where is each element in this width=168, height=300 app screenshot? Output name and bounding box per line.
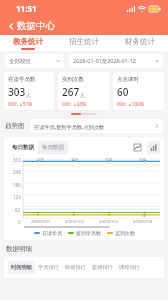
staticText: 在读学员: [42, 230, 62, 236]
staticText: 在读学员,签到学员数,点到次数: [34, 123, 155, 130]
staticText: 300: [105, 157, 113, 163]
button[interactable]: 每日数据: [8, 141, 38, 154]
staticText: 财务统计: [125, 37, 155, 46]
staticText: 同比 ↓100%: [117, 101, 145, 106]
staticText: 数据明细: [6, 245, 32, 253]
button[interactable]: 学员排行: [35, 261, 62, 274]
button[interactable]: 2026-01-01至2026-01-12: [69, 54, 163, 68]
staticText: 20260101: [31, 219, 51, 225]
staticText: 186: [13, 182, 21, 188]
staticText: 时间明细: [11, 264, 32, 271]
staticText: 点名课时: [117, 76, 139, 83]
staticText: 趋势图: [5, 122, 25, 130]
staticText: 20260103: [99, 219, 119, 225]
staticText: 300: [37, 157, 45, 163]
staticText: 20260104: [133, 219, 153, 225]
staticText: 300: [71, 157, 79, 163]
staticText: 实到次数: [62, 76, 84, 83]
staticText: 迟到次数: [115, 230, 135, 236]
staticText: 30: [141, 213, 146, 219]
staticText: 课程排行: [119, 264, 140, 271]
button[interactable]: 课程排行: [116, 261, 143, 274]
button[interactable]: 折线图: [131, 141, 144, 154]
staticText: 11:51: [16, 3, 37, 14]
staticText: 全部校区: [9, 58, 56, 65]
staticText: 在读学员数: [8, 76, 36, 83]
staticText: 教务统计: [13, 37, 43, 46]
staticText: 310: [13, 157, 21, 163]
button[interactable]: 实到次数: [58, 72, 109, 110]
staticText: 60: [117, 85, 129, 99]
staticText: 老师排行: [92, 264, 113, 271]
staticText: 0: [18, 219, 21, 225]
staticText: 招生统计: [69, 37, 99, 46]
button[interactable]: 全部校区: [5, 54, 64, 68]
staticText: 同比 ↓20%: [62, 101, 87, 106]
staticText: 20260102: [65, 219, 85, 225]
staticText: 62: [15, 207, 21, 213]
button[interactable]: 招生统计: [56, 35, 112, 51]
button[interactable]: 柱状图: [147, 141, 160, 154]
button[interactable]: 财务统计: [112, 35, 168, 51]
staticText: 数据中心: [17, 20, 55, 32]
staticText: 267: [62, 85, 80, 99]
staticText: 300: [139, 157, 147, 163]
button[interactable]: 时间明细: [8, 261, 35, 274]
button[interactable]: 班级排行: [62, 261, 89, 274]
staticText: 303: [8, 85, 26, 99]
button[interactable]: 每周数据: [38, 141, 68, 154]
staticText: 班级排行: [65, 264, 86, 271]
staticText: 2026-01-01至2026-01-12: [73, 57, 155, 65]
staticText: 每日数据: [12, 144, 34, 151]
staticText: 人: [26, 92, 31, 98]
staticText: 签到学员数: [76, 230, 101, 236]
staticText: 248: [13, 169, 21, 175]
staticText: 每周数据: [42, 144, 64, 151]
staticText: 学员排行: [38, 264, 59, 271]
button[interactable]: 在读学员,签到学员数,点到次数: [30, 119, 163, 133]
button[interactable]: 点名课时: [113, 72, 164, 110]
button[interactable]: 老师排行: [89, 261, 116, 274]
button[interactable]: 返回: [6, 21, 17, 32]
staticText: 同比 ↓51%: [8, 101, 33, 106]
staticText: 人: [80, 92, 85, 98]
staticText: 124: [13, 194, 21, 200]
button[interactable]: 在读学员数: [4, 72, 54, 110]
button[interactable]: 教务统计: [0, 35, 56, 51]
